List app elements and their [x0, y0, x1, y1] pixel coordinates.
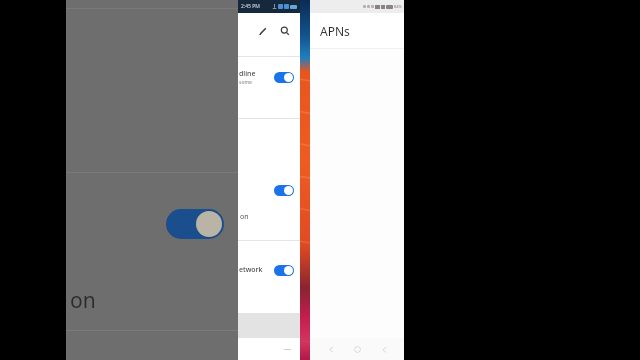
staticText: etwork [239, 265, 263, 275]
staticText: on [70, 286, 96, 315]
button[interactable]: Toggle [274, 265, 294, 276]
button[interactable]: Toggle [274, 185, 294, 196]
button[interactable]: etwork [238, 250, 300, 290]
staticText: APNs [320, 23, 350, 39]
button[interactable]: Edit [252, 20, 274, 42]
button[interactable]: Back [325, 343, 337, 355]
button[interactable]: Home [351, 343, 363, 355]
button[interactable]: Recents [282, 344, 292, 354]
button[interactable]: Toggle [238, 170, 300, 210]
button[interactable] [166, 209, 224, 239]
staticText: 84% [394, 4, 402, 9]
button[interactable]: dline [238, 57, 300, 97]
staticText: 2:45 PM [241, 3, 260, 10]
staticText: some [239, 79, 252, 86]
staticText: on [240, 212, 249, 222]
staticText: dline [239, 69, 256, 79]
button[interactable]: Search [274, 20, 296, 42]
button[interactable]: Toggle [274, 72, 294, 83]
button[interactable]: Recents [378, 343, 390, 355]
